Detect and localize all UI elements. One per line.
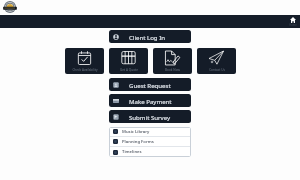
staticText: Make Payment [129, 97, 172, 105]
button[interactable]: Get A Quote [109, 48, 148, 74]
button[interactable]: Contact Us [197, 48, 236, 74]
staticText: Book Now [165, 68, 180, 72]
button[interactable]: Music Library [109, 127, 191, 136]
staticText: Home [289, 23, 297, 27]
staticText: Submit Survey [129, 113, 171, 121]
button[interactable]: Book Now [153, 48, 192, 74]
staticText: Contact Us [209, 68, 225, 72]
staticText: Music Library [122, 129, 150, 135]
staticText: Timelines [122, 149, 142, 155]
staticText: Get A Quote [120, 68, 138, 72]
button[interactable]: Guest Request [109, 78, 191, 91]
staticText: Check Availability [72, 68, 98, 72]
staticText: Planning Forms [122, 139, 154, 145]
button[interactable]: Submit Survey [109, 110, 191, 123]
staticText: Guest Request [129, 81, 171, 89]
button[interactable]: Timelines [109, 147, 191, 157]
button[interactable]: Make Payment [109, 94, 191, 107]
button[interactable]: Client Log In [109, 30, 191, 43]
button[interactable]: Home [289, 17, 297, 27]
button[interactable]: Home logo [4, 1, 16, 13]
staticText: Client Log In [129, 33, 166, 41]
button[interactable]: Check Availability [65, 48, 104, 74]
button[interactable]: Planning Forms [109, 137, 191, 146]
